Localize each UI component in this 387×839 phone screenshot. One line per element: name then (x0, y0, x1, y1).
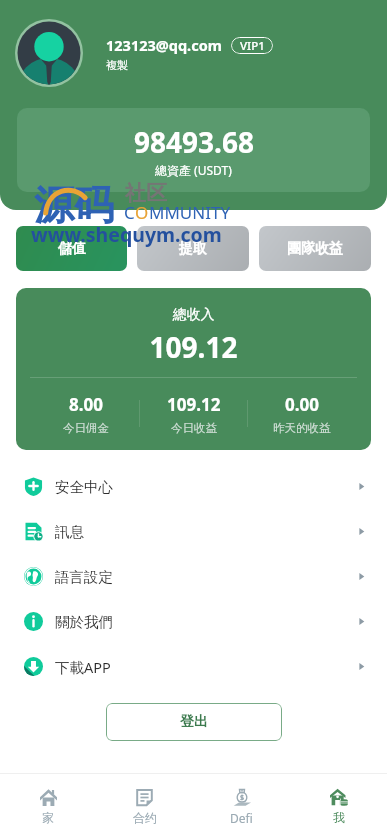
staticText: 今日收益 (171, 421, 217, 435)
staticText: 訊息 (55, 523, 84, 541)
staticText: C (124, 201, 135, 224)
staticText: 總收入 (16, 306, 371, 324)
button[interactable]: 團隊收益 (259, 226, 371, 271)
staticText: 登出 (180, 713, 208, 731)
button[interactable]: 安全中心 (0, 464, 387, 509)
staticText: 社区 (125, 180, 167, 206)
staticText: www.shequym.com (31, 221, 222, 248)
button[interactable]: Defi (193, 774, 290, 839)
staticText: MMUNITY (149, 201, 231, 224)
staticText: 123123@qq.com (106, 35, 222, 55)
button[interactable]: 提取 (137, 226, 249, 271)
button[interactable]: 關於我們 (0, 599, 387, 644)
staticText: 今日佣金 (63, 421, 109, 435)
staticText: 0.00 (285, 393, 319, 416)
staticText: 我 (333, 810, 345, 825)
staticText: 8.00 (69, 393, 103, 416)
staticText: 源码 (34, 180, 114, 230)
button[interactable]: 家 (0, 774, 96, 839)
staticText: 109.12 (16, 328, 371, 366)
staticText: 98493.68 (134, 123, 254, 161)
button[interactable]: 下載APP (0, 644, 387, 689)
staticText: 下載APP (55, 657, 111, 677)
staticText: 109.12 (167, 393, 221, 416)
staticText: VIP1 (240, 38, 265, 54)
button[interactable]: 我 (290, 774, 387, 839)
button[interactable]: 登出 (106, 703, 282, 741)
staticText: 家 (42, 810, 54, 825)
button[interactable]: 訊息 (0, 509, 387, 554)
staticText: 總資產 (USDT) (155, 162, 232, 178)
button[interactable]: 語言設定 (0, 554, 387, 599)
staticText: 安全中心 (55, 478, 113, 496)
staticText: 提取 (179, 240, 207, 258)
staticText: O (135, 201, 149, 224)
staticText: 儲值 (58, 240, 86, 258)
staticText: 合约 (133, 810, 157, 825)
staticText: 昨天的收益 (273, 421, 331, 435)
staticText: 團隊收益 (287, 240, 343, 258)
button[interactable]: 合约 (96, 774, 193, 839)
button[interactable]: 儲值 (16, 226, 127, 271)
staticText: Defi (230, 810, 253, 826)
button[interactable]: 複製 (106, 58, 128, 72)
staticText: 關於我們 (55, 613, 113, 631)
staticText: 語言設定 (55, 568, 113, 586)
